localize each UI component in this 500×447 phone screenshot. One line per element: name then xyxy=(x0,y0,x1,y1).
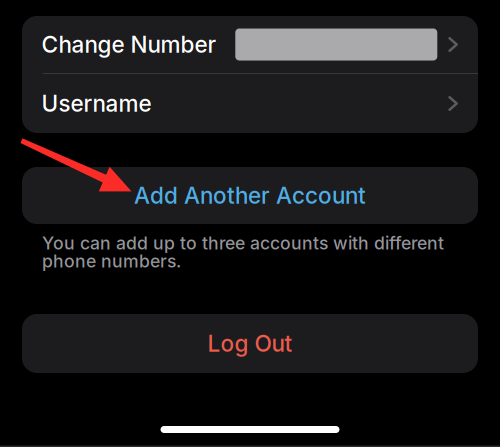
button[interactable]: Log Out xyxy=(22,314,478,373)
staticText: You can add up to three accounts with di… xyxy=(42,234,444,270)
staticText: Change Number xyxy=(41,31,216,58)
button[interactable]: Change Number xyxy=(22,16,478,73)
staticText: Add Another Account xyxy=(134,182,366,209)
button[interactable]: Username xyxy=(22,74,478,133)
button[interactable]: Add Another Account xyxy=(22,167,478,224)
staticText: Username xyxy=(41,90,151,117)
staticText: Log Out xyxy=(207,330,292,357)
